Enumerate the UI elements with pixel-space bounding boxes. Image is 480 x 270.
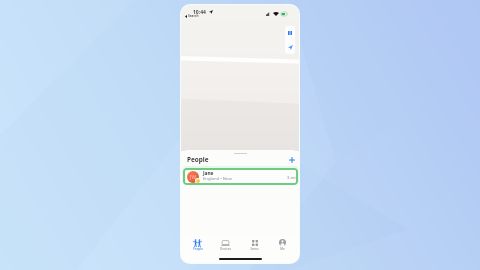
staticText: 10:44 bbox=[193, 9, 206, 16]
button[interactable]: Map type bbox=[285, 26, 295, 40]
staticText: Jane bbox=[203, 170, 214, 177]
button[interactable]: JW bbox=[183, 168, 298, 185]
staticText: People bbox=[187, 155, 209, 164]
button[interactable]: Items bbox=[242, 238, 267, 251]
staticText: England • Now bbox=[203, 176, 232, 182]
staticText: JW bbox=[190, 174, 196, 181]
button[interactable]: My location bbox=[285, 40, 295, 54]
button[interactable]: Add person bbox=[287, 155, 297, 165]
staticText: Search bbox=[188, 14, 199, 18]
staticText: Devices bbox=[220, 247, 231, 251]
button[interactable]: Me bbox=[270, 238, 295, 251]
staticText: Items bbox=[250, 247, 259, 251]
button[interactable]: People bbox=[185, 238, 210, 251]
staticText: People bbox=[193, 247, 203, 251]
staticText: Me bbox=[280, 247, 285, 251]
staticText: 3 mi bbox=[287, 175, 296, 181]
button[interactable]: Devices bbox=[213, 238, 238, 251]
